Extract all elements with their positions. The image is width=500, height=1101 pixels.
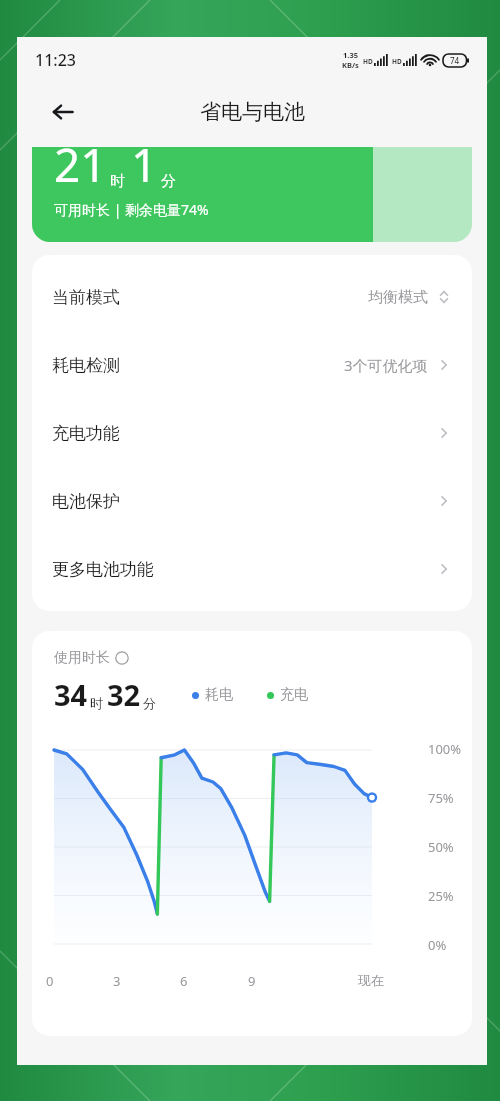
staticText: 耗电检测	[52, 355, 120, 376]
staticText: 32	[107, 675, 141, 714]
staticText: 74	[450, 55, 460, 66]
button[interactable]: Back	[43, 92, 83, 132]
button[interactable]: 耗电检测	[32, 331, 472, 399]
button[interactable]: 更多电池功能	[32, 535, 472, 603]
button[interactable]: 充电功能	[32, 399, 472, 467]
staticText: 3个可优化项	[344, 355, 428, 375]
staticText: 0	[46, 972, 113, 990]
staticText: 电池保护	[52, 491, 120, 512]
staticText: 1.35	[343, 50, 358, 60]
staticText: 34	[54, 675, 88, 714]
staticText: HD	[392, 57, 402, 66]
staticText: 25%	[428, 887, 454, 905]
staticText: 时	[90, 695, 103, 711]
staticText: 现在	[316, 972, 384, 988]
staticText: 100%	[428, 740, 462, 758]
staticText: 6	[180, 972, 248, 990]
staticText: 9	[248, 972, 316, 990]
staticText: 75%	[428, 789, 454, 807]
staticText: HD	[363, 57, 373, 66]
button[interactable]: 21	[32, 147, 472, 242]
staticText: 均衡模式	[368, 288, 428, 307]
staticText: 50%	[428, 838, 454, 856]
staticText: 充电	[280, 686, 308, 704]
staticText: 充电功能	[52, 423, 120, 444]
staticText: 分	[143, 695, 156, 711]
staticText: 0%	[428, 936, 447, 954]
staticText: 11:23	[35, 49, 76, 71]
staticText: 耗电	[205, 686, 233, 704]
staticText: 使用时长	[54, 649, 110, 667]
staticText: 21	[54, 147, 107, 196]
staticText: KB/s	[342, 60, 359, 70]
button[interactable]: 电池保护	[32, 467, 472, 535]
staticText: 分	[161, 172, 176, 191]
staticText: 时	[110, 172, 125, 191]
staticText: 当前模式	[52, 287, 120, 308]
staticText: 可用时长 | 剩余电量74%	[54, 200, 209, 219]
staticText: 3	[113, 972, 180, 990]
staticText: 更多电池功能	[52, 559, 154, 580]
staticText: 省电与电池	[200, 99, 305, 125]
button[interactable]: 当前模式	[32, 263, 472, 331]
staticText: 1	[131, 147, 158, 196]
